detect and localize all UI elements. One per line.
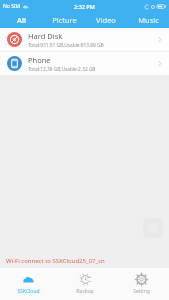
- button[interactable]: Video: [85, 12, 127, 28]
- staticText: Phone: [28, 55, 51, 65]
- button[interactable]: Setting: [113, 268, 169, 300]
- staticText: SSKCloud: [17, 288, 40, 295]
- staticText: Total:931.51 GB,Usable:913.89 GB: [28, 42, 104, 49]
- staticText: 2:32 PM: [74, 3, 95, 10]
- button[interactable]: Hard Disk: [0, 28, 169, 51]
- staticText: Picture: [52, 15, 77, 25]
- button[interactable]: All: [0, 12, 43, 28]
- staticText: Video: [96, 15, 116, 25]
- button[interactable]: Backup: [57, 268, 113, 300]
- staticText: Hard Disk: [28, 31, 63, 41]
- button[interactable]: Phone: [0, 52, 169, 75]
- button[interactable]: Music: [127, 12, 169, 28]
- staticText: Wi-Fi connect to SSKCloud25_07_cn: [6, 257, 105, 265]
- button[interactable]: Picture: [43, 12, 85, 28]
- staticText: Setting: [133, 288, 150, 295]
- staticText: All: [17, 15, 26, 25]
- staticText: Music: [138, 15, 159, 25]
- button[interactable]: SSKCloud: [0, 268, 57, 300]
- staticText: Backup: [76, 288, 94, 295]
- staticText: Total:12.36 GB,Usable:2.32 GB: [28, 66, 96, 73]
- staticText: No SIM: [3, 3, 21, 10]
